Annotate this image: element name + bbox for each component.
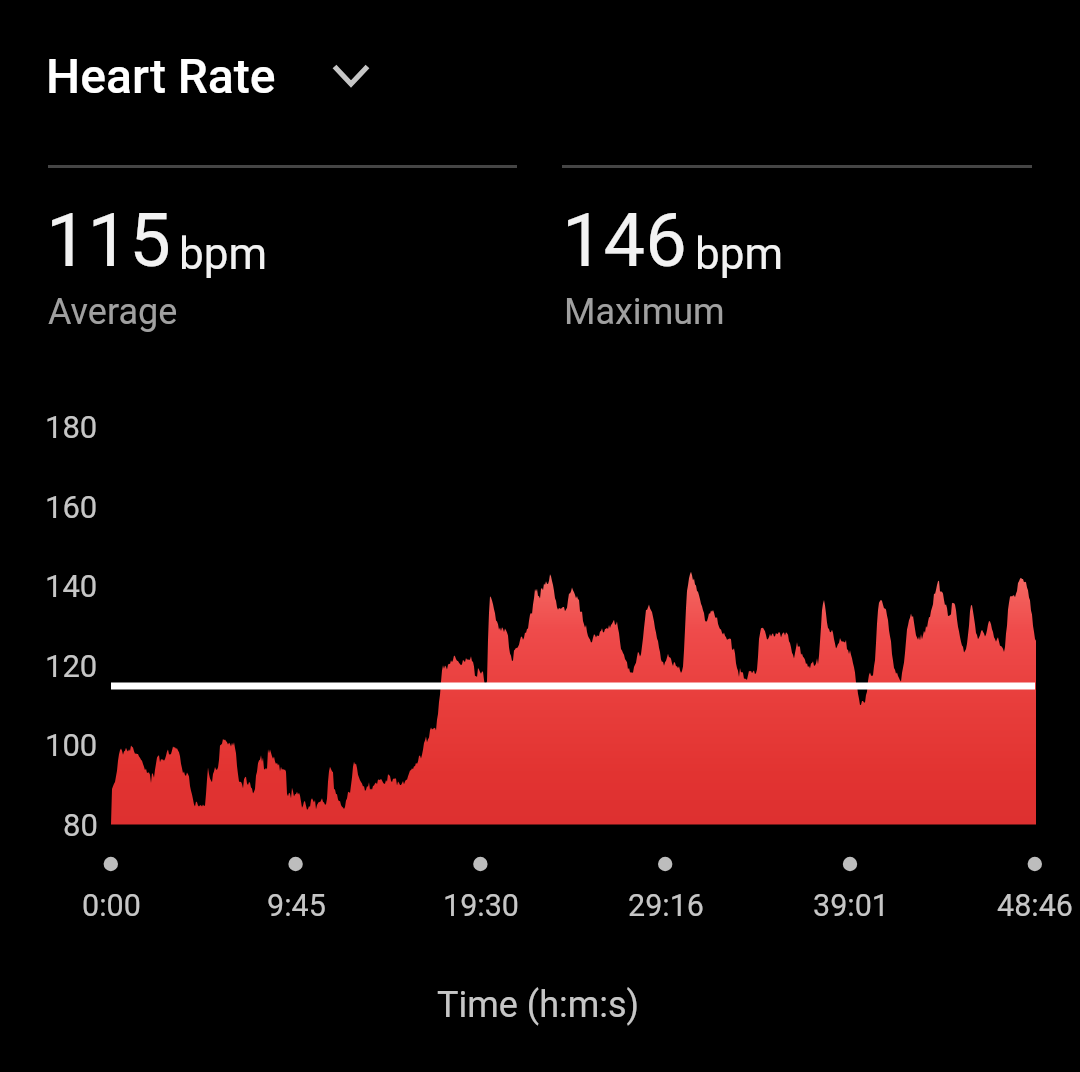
staticText: 19:30 — [443, 888, 519, 924]
staticText: 39:01 — [813, 888, 889, 924]
staticText: Average — [48, 291, 178, 333]
staticText: 140 — [45, 568, 98, 604]
button[interactable]: Heart Rate, change metric — [46, 40, 382, 100]
staticText: Time (h:m:s) — [437, 984, 640, 1026]
button[interactable]: 146 — [560, 166, 1032, 336]
staticText: 29:16 — [628, 888, 704, 924]
staticText: 160 — [45, 489, 98, 525]
button[interactable]: 115 — [44, 166, 516, 336]
staticText: 100 — [45, 727, 98, 763]
staticText: 180 — [45, 409, 98, 445]
staticText: 120 — [45, 648, 98, 684]
staticText: 9:45 — [267, 888, 326, 924]
staticText: Maximum — [564, 291, 725, 333]
staticText: Heart Rate — [46, 48, 276, 104]
staticText: 48:46 — [997, 888, 1073, 924]
staticText: bpm — [179, 228, 267, 280]
staticText: 146 — [562, 197, 687, 284]
staticText: 80 — [63, 807, 98, 843]
staticText: 115 — [46, 197, 171, 284]
staticText: 0:00 — [82, 888, 141, 924]
staticText: bpm — [695, 228, 783, 280]
